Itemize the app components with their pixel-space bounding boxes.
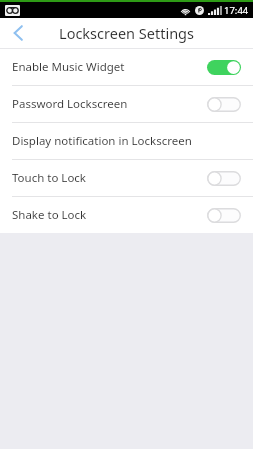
button[interactable]: Toggle off <box>207 208 241 223</box>
button[interactable]: Toggle off <box>207 97 241 112</box>
button[interactable]: Toggle off <box>207 171 241 186</box>
staticText: 17:44 <box>224 4 249 17</box>
button[interactable]: Touch to Lock <box>0 160 253 196</box>
staticText: Lockscreen Settings <box>0 23 253 43</box>
staticText: Password Lockscreen <box>12 96 128 112</box>
button[interactable]: Toggle on <box>207 60 241 75</box>
button[interactable]: Back <box>0 18 36 48</box>
staticText: Shake to Lock <box>12 207 87 223</box>
staticText: Touch to Lock <box>12 170 87 186</box>
button[interactable]: Enable Music Widget <box>0 49 253 85</box>
button[interactable]: Password Lockscreen <box>0 86 253 122</box>
staticText: Enable Music Widget <box>12 59 125 75</box>
staticText: Display notification in Lockscreen <box>12 133 192 149</box>
button[interactable]: Display notification in Lockscreen <box>0 123 253 159</box>
button[interactable]: Shake to Lock <box>0 197 253 233</box>
